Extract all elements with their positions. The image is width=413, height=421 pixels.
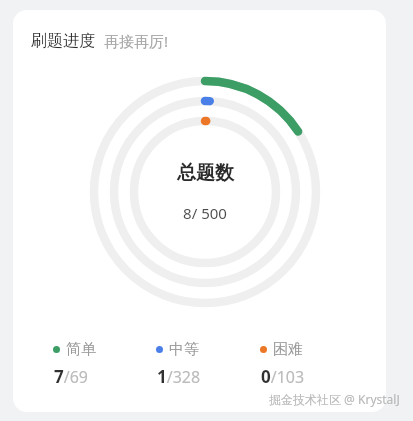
staticText: 简单	[66, 340, 96, 359]
staticText: 0/103	[261, 365, 305, 388]
staticText: 再接再厉!	[104, 31, 169, 51]
staticText: 7/69	[54, 365, 88, 388]
staticText: 1/328	[157, 365, 201, 388]
staticText: 刷题进度	[31, 31, 95, 51]
button[interactable]: 困难	[260, 340, 364, 388]
staticText: 掘金技术社区 @ KrystalJ	[269, 391, 400, 407]
staticText: 8/ 500	[183, 203, 227, 223]
staticText: 中等	[169, 340, 199, 359]
button[interactable]: 中等	[156, 340, 260, 388]
staticText: 困难	[273, 340, 303, 359]
button[interactable]: 简单	[53, 340, 156, 388]
staticText: 总题数	[177, 161, 234, 185]
button[interactable]: 刷题进度	[13, 10, 386, 412]
